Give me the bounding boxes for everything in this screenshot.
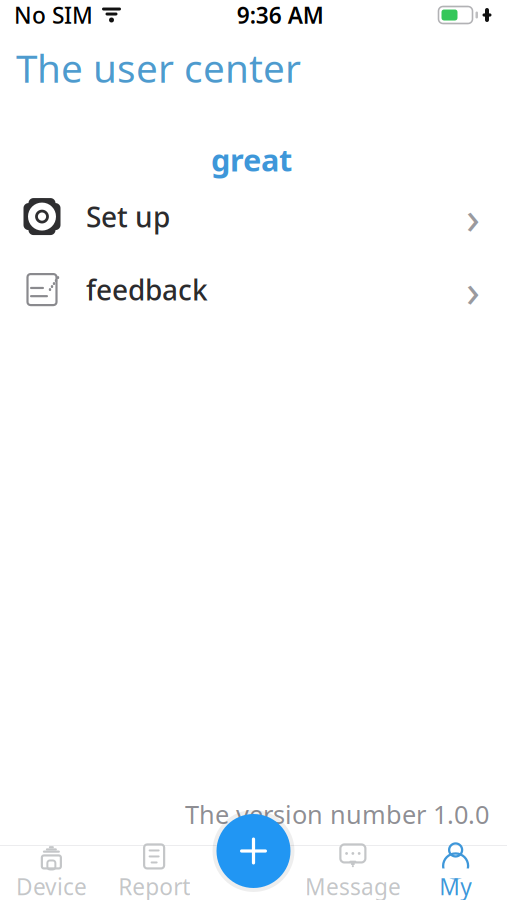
staticText: Device [16,871,87,900]
button[interactable]: Device [0,845,103,900]
staticText: Set up [86,198,170,235]
button[interactable]: feedback [0,253,507,326]
staticText: My [439,871,472,900]
staticText: feedback [86,271,208,308]
button[interactable]: Message [301,845,404,900]
button[interactable]: Add [208,806,298,896]
staticText: The user center [16,42,301,93]
button[interactable]: Report [103,845,206,900]
staticText: great [211,139,292,180]
staticText: Report [118,871,190,900]
button[interactable]: Set up [0,180,507,253]
staticText: No SIM [14,0,93,30]
staticText: › [466,259,480,320]
staticText: Message [305,871,401,900]
button[interactable]: My [404,845,507,900]
staticText: The version number 1.0.0 [185,797,489,831]
staticText: 9:36 AM [237,0,324,30]
staticText: › [466,186,480,247]
